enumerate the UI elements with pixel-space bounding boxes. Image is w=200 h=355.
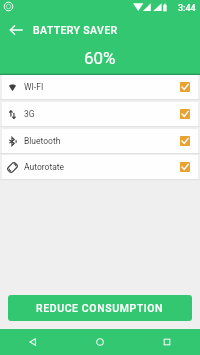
staticText: WI-FI [24,82,44,92]
button[interactable]: Bluetooth [2,129,198,153]
button[interactable]: 3G [2,102,198,126]
staticText: REDUCE CONSUMPTION [36,302,164,314]
staticText: Bluetooth [24,136,61,146]
button[interactable]: Autorotate [2,155,198,179]
button[interactable]: Back [0,329,66,355]
staticText: 60% [84,48,116,68]
button[interactable]: WI-FI [2,75,198,99]
staticText: 3:44 [178,3,196,14]
staticText: 3G [24,109,35,119]
button[interactable]: Recent apps [133,329,200,355]
button[interactable]: Home [66,329,133,355]
button[interactable]: REDUCE CONSUMPTION [8,295,192,321]
staticText: Autorotate [24,162,65,172]
staticText: BATTERY SAVER [33,24,118,36]
button[interactable]: Back [0,14,32,46]
